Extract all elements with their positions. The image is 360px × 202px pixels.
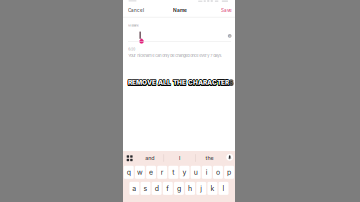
staticText: l [223, 184, 225, 193]
button[interactable]: f [163, 182, 173, 195]
staticText: j [200, 184, 202, 193]
staticText: S [229, 80, 233, 88]
staticText: ALL [157, 79, 170, 86]
staticText: S [229, 80, 233, 87]
staticText: THE [173, 78, 186, 86]
button[interactable]: l [219, 182, 228, 195]
staticText: THE [172, 79, 185, 86]
staticText: CHARACTER [188, 78, 229, 86]
button[interactable]: t [168, 166, 178, 179]
staticText: REMOVE [129, 79, 157, 86]
staticText: THE [173, 78, 186, 86]
staticText: u [194, 168, 198, 176]
staticText: REMOVE [128, 79, 156, 87]
staticText: CHARACTER [188, 79, 229, 87]
staticText: ALL [158, 79, 171, 87]
staticText: Cancel [128, 8, 144, 13]
staticText: o [216, 168, 220, 176]
staticText: ALL [158, 78, 171, 86]
button[interactable]: the [197, 152, 223, 163]
staticText: e [149, 168, 153, 176]
staticText: CHARACTER [188, 80, 229, 87]
staticText: Name [173, 7, 187, 13]
staticText: S [229, 78, 233, 86]
button[interactable]: r [157, 166, 167, 179]
staticText: CHARACTER [188, 79, 229, 86]
staticText: p [227, 168, 231, 176]
staticText: f [166, 184, 169, 193]
staticText: ALL [158, 79, 171, 86]
staticText: y [182, 168, 186, 176]
button[interactable]: u [191, 166, 201, 179]
staticText: S [229, 78, 233, 86]
staticText: ALL [158, 80, 171, 87]
button[interactable]: I [166, 152, 192, 163]
staticText: THE [173, 80, 186, 87]
staticText: CHARACTER [189, 79, 230, 86]
button[interactable]: i [202, 166, 212, 179]
staticText: s [143, 184, 147, 193]
staticText: I [179, 155, 180, 161]
button[interactable]: Save [214, 5, 232, 16]
button[interactable]: Cancel [128, 5, 148, 16]
button[interactable]: a [129, 182, 139, 195]
staticText: CHARACTER [188, 78, 229, 86]
staticText: THE [173, 79, 186, 87]
staticText: REMOVE [127, 79, 155, 87]
button[interactable]: s [141, 182, 150, 195]
staticText: REMOVE [128, 78, 156, 86]
staticText: THE [173, 79, 186, 86]
staticText: S [229, 79, 233, 87]
button[interactable]: d [152, 182, 162, 195]
staticText: S [228, 79, 232, 86]
staticText: CHARACTER [188, 80, 229, 88]
button[interactable]: Clear text [228, 34, 232, 38]
button[interactable]: w [135, 166, 145, 179]
staticText: w [137, 168, 143, 176]
staticText: h [188, 184, 192, 193]
staticText: × [229, 34, 231, 38]
button[interactable]: h [185, 182, 195, 195]
button[interactable]: k [207, 182, 217, 195]
staticText: CHARACTER [188, 79, 229, 87]
button[interactable]: o [213, 166, 223, 179]
staticText: S [229, 79, 233, 87]
staticText: ALL [158, 78, 171, 86]
staticText: REMOVE [128, 80, 156, 87]
staticText: CHARACTER [188, 78, 229, 86]
staticText: g [177, 184, 181, 193]
staticText: d [155, 184, 159, 193]
staticText: REMOVE [127, 78, 155, 86]
staticText: a [132, 184, 136, 193]
staticText: ALL [158, 78, 171, 86]
button[interactable]: j [196, 182, 206, 195]
staticText: CHARACTER [187, 79, 228, 86]
staticText: THE [173, 80, 186, 88]
button[interactable]: y [180, 166, 189, 179]
staticText: S [229, 78, 233, 86]
staticText: k [210, 184, 214, 193]
staticText: and [145, 155, 154, 161]
staticText: THE [173, 80, 186, 87]
button[interactable]: Emoji keyboard [127, 155, 133, 161]
staticText: i [206, 168, 208, 176]
button[interactable]: g [174, 182, 184, 195]
staticText: S [230, 79, 234, 86]
button[interactable]: q [124, 166, 134, 179]
staticText: ALL [158, 80, 171, 87]
staticText: THE [174, 79, 187, 86]
staticText: THE [173, 78, 186, 86]
staticText: ALL [158, 79, 171, 87]
button[interactable]: e [146, 166, 156, 179]
staticText: Nickname [128, 24, 138, 27]
button[interactable]: and [137, 152, 163, 163]
button[interactable]: p [224, 166, 234, 179]
button[interactable]: Dictation [226, 154, 233, 161]
staticText: Save [221, 8, 232, 13]
staticText: REMOVE [127, 79, 155, 86]
staticText: t [172, 168, 174, 176]
staticText: ALL [158, 80, 171, 88]
staticText: THE [173, 79, 186, 87]
staticText: REMOVE [128, 78, 156, 86]
staticText: 6/20 [128, 47, 135, 51]
